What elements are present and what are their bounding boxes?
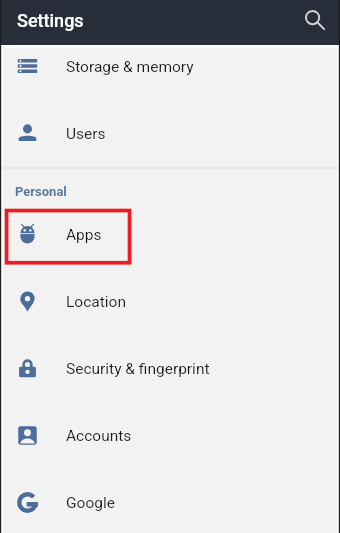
button[interactable]: Users	[0, 100, 340, 167]
button[interactable]: Apps	[0, 201, 340, 268]
staticText: Storage & memory	[66, 58, 194, 76]
staticText: Accounts	[66, 427, 132, 445]
button[interactable]: Location	[0, 268, 340, 335]
staticText: Settings	[17, 10, 84, 31]
staticText: Location	[66, 293, 126, 311]
button[interactable]: Google	[0, 469, 340, 533]
button[interactable]: Accounts	[0, 402, 340, 469]
staticText: Users	[66, 125, 106, 143]
button[interactable]: Security & fingerprint	[0, 335, 340, 402]
staticText: Apps	[66, 226, 102, 244]
staticText: Security & fingerprint	[66, 360, 210, 378]
staticText: Personal	[15, 184, 67, 199]
button[interactable]: Storage & memory	[0, 33, 340, 100]
button[interactable]: Search	[295, 0, 335, 39]
staticText: Google	[66, 494, 115, 512]
